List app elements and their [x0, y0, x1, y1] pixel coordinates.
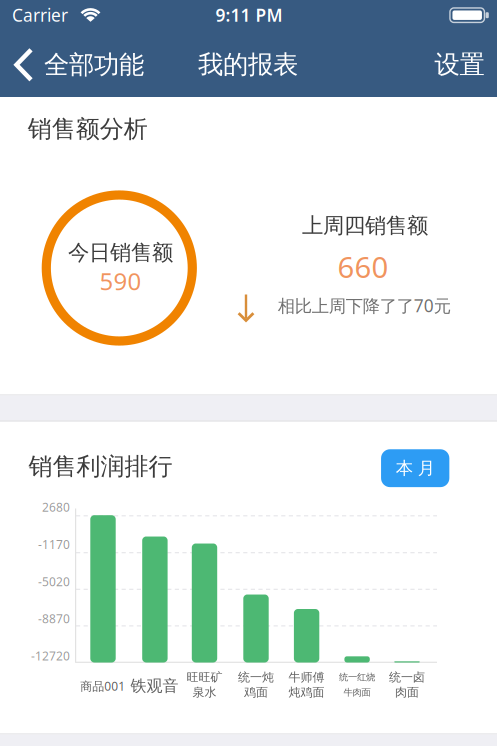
staticText: 590 — [99, 265, 141, 297]
staticText: 牛师傅 — [289, 670, 325, 684]
staticText: 销售额分析 — [28, 114, 148, 144]
staticText: 销售利润排行 — [29, 452, 173, 481]
staticText: 旺旺矿 — [186, 670, 222, 684]
staticText: 本 月 — [396, 458, 435, 479]
staticText: 鸡面 — [244, 685, 268, 700]
staticText: -5020 — [38, 573, 70, 589]
staticText: Carrier — [12, 3, 68, 26]
staticText: 660 — [337, 247, 388, 286]
staticText: 商品001 — [80, 678, 125, 694]
staticText: 相比上周下降了了70元 — [278, 294, 451, 317]
staticText: 我的报表 — [198, 49, 298, 80]
staticText: 全部功能 — [44, 49, 144, 80]
staticText: 肉面 — [395, 685, 419, 700]
staticText: 统一红烧 — [339, 671, 375, 683]
staticText: -8870 — [38, 611, 70, 627]
staticText: 铁观音 — [130, 676, 178, 696]
staticText: -12720 — [31, 648, 70, 664]
staticText: 设置 — [434, 49, 484, 80]
staticText: 统一炖 — [238, 670, 274, 684]
staticText: 炖鸡面 — [289, 685, 325, 700]
button[interactable]: 本 月 — [381, 449, 449, 487]
staticText: 上周四销售额 — [302, 212, 428, 239]
staticText: 2680 — [42, 499, 70, 515]
staticText: 统一卤 — [389, 670, 425, 684]
staticText: 泉水 — [192, 685, 216, 700]
staticText: -1170 — [38, 536, 70, 552]
staticText: 牛肉面 — [344, 687, 371, 698]
staticText: 今日销售额 — [68, 239, 173, 266]
staticText: 9:11 PM — [215, 3, 282, 26]
button[interactable]: 全部功能 — [14, 48, 144, 82]
button[interactable]: 设置 — [434, 49, 484, 80]
